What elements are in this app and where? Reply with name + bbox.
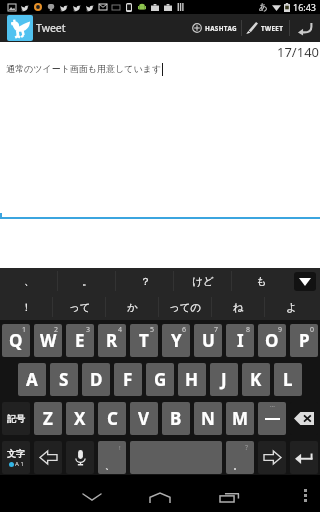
- staticText: H: [185, 368, 199, 391]
- staticText: ？: [140, 275, 151, 288]
- button[interactable]: B: [162, 402, 190, 435]
- button[interactable]: ね: [212, 294, 265, 320]
- staticText: U: [202, 329, 215, 352]
- staticText: A 1: [15, 460, 24, 468]
- staticText: ?: [245, 443, 249, 453]
- button[interactable]: V: [130, 402, 158, 435]
- button[interactable]: Enter: [290, 441, 318, 474]
- staticText: けど: [192, 275, 214, 288]
- button[interactable]: Q: [2, 324, 30, 357]
- button[interactable]: よ: [265, 294, 318, 320]
- staticText: ね: [233, 301, 244, 314]
- staticText: I: [237, 329, 244, 352]
- staticText: 16:43: [293, 1, 317, 13]
- button[interactable]: Left: [34, 441, 62, 474]
- staticText: F: [123, 368, 133, 391]
- button[interactable]: っての: [159, 294, 212, 320]
- button[interactable]: Back: [70, 482, 114, 508]
- staticText: M: [232, 407, 249, 430]
- staticText: 、: [24, 275, 35, 288]
- staticText: って: [69, 301, 91, 314]
- button[interactable]: 、: [0, 268, 58, 294]
- button[interactable]: ！: [0, 294, 53, 320]
- staticText: 、: [105, 460, 114, 471]
- button[interactable]: ？: [116, 268, 174, 294]
- button[interactable]: Home: [138, 482, 182, 508]
- staticText: C: [107, 407, 118, 430]
- button[interactable]: I: [226, 324, 254, 357]
- button[interactable]: Undo: [290, 14, 320, 42]
- staticText: D: [90, 368, 103, 391]
- button[interactable]: S: [50, 363, 78, 396]
- button[interactable]: C: [98, 402, 126, 435]
- button[interactable]: W: [34, 324, 62, 357]
- button[interactable]: More suggestions: [290, 268, 320, 294]
- staticText: TWEET: [261, 24, 284, 33]
- button[interactable]: 。: [58, 268, 116, 294]
- button[interactable]: P: [290, 324, 318, 357]
- staticText: Y: [171, 329, 182, 352]
- staticText: B: [170, 407, 182, 430]
- button[interactable]: O: [258, 324, 286, 357]
- button[interactable]: App icon: [7, 15, 33, 41]
- staticText: ！: [21, 301, 32, 314]
- staticText: W: [40, 329, 57, 352]
- staticText: E: [75, 329, 85, 352]
- button[interactable]: Backspace: [290, 402, 318, 435]
- button[interactable]: U: [194, 324, 222, 357]
- button[interactable]: Symbols: [2, 402, 30, 435]
- button[interactable]: M: [226, 402, 254, 435]
- button[interactable]: TWEET: [242, 14, 289, 42]
- staticText: K: [250, 368, 262, 391]
- button[interactable]: HASHTAG: [192, 14, 241, 42]
- button[interactable]: A: [18, 363, 46, 396]
- staticText: R: [106, 329, 118, 352]
- button[interactable]: Z: [34, 402, 62, 435]
- staticText: A: [26, 368, 38, 391]
- staticText: よ: [286, 301, 297, 314]
- staticText: 4: [118, 325, 123, 335]
- staticText: 6: [182, 325, 187, 335]
- button[interactable]: More options: [292, 482, 318, 508]
- staticText: 5: [150, 325, 155, 335]
- button[interactable]: H: [178, 363, 206, 396]
- staticText: Q: [9, 329, 23, 352]
- staticText: も: [256, 275, 267, 288]
- button[interactable]: Comma: [98, 441, 126, 474]
- staticText: 17/140: [277, 43, 320, 61]
- staticText: O: [265, 329, 279, 352]
- staticText: G: [154, 368, 167, 391]
- button[interactable]: けど: [174, 268, 232, 294]
- staticText: T: [139, 329, 149, 352]
- button[interactable]: F: [114, 363, 142, 396]
- button[interactable]: Change input mode: [2, 441, 30, 474]
- button[interactable]: って: [53, 294, 106, 320]
- button[interactable]: Recent apps: [207, 482, 251, 508]
- staticText: S: [59, 368, 69, 391]
- button[interactable]: Y: [162, 324, 190, 357]
- button[interactable]: T: [130, 324, 158, 357]
- button[interactable]: も: [232, 268, 290, 294]
- button[interactable]: Long vowel: [258, 402, 286, 435]
- button[interactable]: N: [194, 402, 222, 435]
- staticText: 1: [22, 325, 27, 335]
- staticText: 2: [54, 325, 59, 335]
- button[interactable]: D: [82, 363, 110, 396]
- button[interactable]: G: [146, 363, 174, 396]
- staticText: 8: [246, 325, 251, 335]
- button[interactable]: K: [242, 363, 270, 396]
- button[interactable]: R: [98, 324, 126, 357]
- button[interactable]: E: [66, 324, 94, 357]
- button[interactable]: Period: [226, 441, 254, 474]
- button[interactable]: Right: [258, 441, 286, 474]
- button[interactable]: Voice input: [66, 441, 94, 474]
- staticText: N: [201, 407, 215, 430]
- button[interactable]: X: [66, 402, 94, 435]
- button[interactable]: J: [210, 363, 238, 396]
- staticText: J: [221, 368, 227, 391]
- button[interactable]: か: [106, 294, 159, 320]
- staticText: 。: [82, 275, 93, 288]
- button[interactable]: L: [274, 363, 302, 396]
- staticText: 通常のツイート画面も用意しています: [6, 63, 162, 74]
